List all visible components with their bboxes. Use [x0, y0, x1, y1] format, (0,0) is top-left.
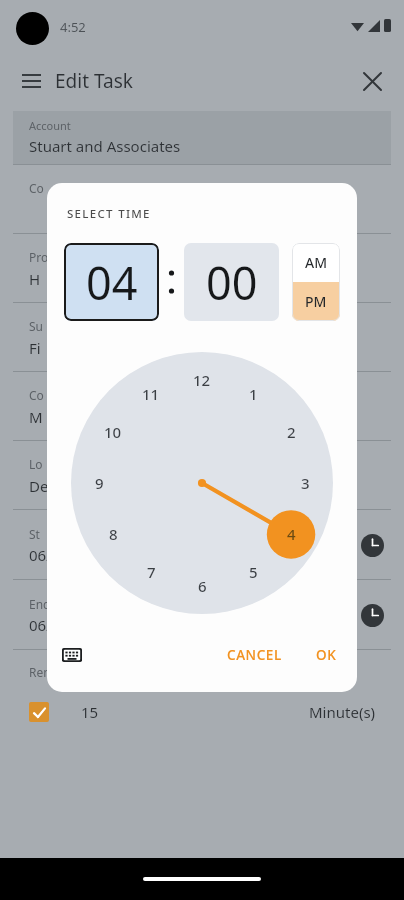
staticText: 5 [249, 562, 258, 582]
staticText: Stuart and Associates [29, 136, 181, 156]
staticText: Su [29, 318, 44, 334]
staticText: Fi [29, 338, 41, 358]
staticText: De [29, 476, 49, 496]
staticText: 06/ [29, 545, 52, 565]
staticText: Co [29, 180, 44, 196]
staticText: 9 [95, 473, 104, 493]
staticText: Reminder [29, 664, 85, 680]
staticText: H [29, 269, 41, 289]
button[interactable]: Pro [0, 234, 404, 302]
button[interactable]: PM [292, 282, 340, 321]
staticText: M [29, 407, 43, 427]
button[interactable]: 00 [184, 243, 279, 321]
staticText: Account [29, 118, 71, 133]
button[interactable]: AM [292, 243, 340, 282]
staticText: CANCEL [227, 646, 282, 664]
staticText: 1 [249, 384, 258, 404]
button[interactable]: Reminder enabled [29, 702, 49, 722]
staticText: 3 [301, 473, 310, 493]
staticText: End Date [29, 596, 81, 612]
button[interactable]: Co [0, 165, 404, 233]
other: Pick time [361, 534, 384, 557]
staticText: SELECT TIME [67, 206, 151, 222]
other: Pick time [361, 604, 384, 627]
staticText: St [29, 526, 40, 542]
button[interactable]: Menu [14, 64, 48, 98]
button[interactable]: Su [0, 303, 404, 371]
staticText: Lo [29, 456, 43, 472]
staticText: 7 [147, 562, 156, 582]
staticText: 00 [206, 252, 258, 313]
staticText: 04 [86, 252, 138, 313]
button[interactable]: 04 [64, 243, 159, 321]
staticText: Minute(s) [309, 702, 376, 722]
staticText: 2 [287, 422, 296, 442]
button[interactable]: St [0, 510, 202, 580]
button[interactable]: Switch to text input [56, 639, 88, 671]
staticText: Edit Task [55, 68, 133, 94]
staticText: 6 [198, 576, 207, 596]
button[interactable]: End Date [0, 580, 202, 650]
button[interactable]: Co [0, 372, 404, 440]
staticText: 15 [81, 702, 99, 722]
button[interactable]: Pick time [202, 510, 404, 580]
staticText: Pro [29, 249, 49, 265]
staticText: Co [29, 387, 44, 403]
staticText: OK [316, 646, 337, 664]
staticText: End Time [218, 596, 271, 612]
staticText: 11 [142, 384, 160, 404]
other: Pick date [161, 606, 180, 625]
button[interactable]: OK [306, 638, 347, 672]
staticText: 8 [109, 524, 118, 544]
button[interactable]: CANCEL [217, 638, 292, 672]
staticText: 06/29/2023 [29, 615, 109, 635]
button[interactable]: Close [354, 63, 390, 99]
staticText: 4:52 [60, 18, 86, 36]
staticText: 4 [287, 524, 296, 544]
staticText: AM [305, 253, 328, 272]
staticText: 12 [193, 370, 211, 390]
button[interactable]: Account [13, 111, 391, 164]
staticText: 10 [104, 422, 122, 442]
button[interactable]: Lo [0, 441, 404, 509]
staticText: PM [305, 292, 327, 311]
button[interactable]: End Time [202, 580, 404, 650]
